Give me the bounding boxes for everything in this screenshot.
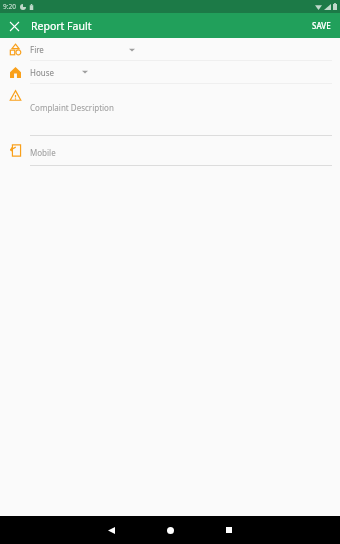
- staticText: Complaint Description: [30, 102, 114, 113]
- button[interactable]: Complaint: [0, 84, 340, 135]
- button[interactable]: Back: [100, 519, 122, 541]
- button[interactable]: Category: [0, 39, 340, 60]
- button[interactable]: Location: [0, 61, 340, 83]
- button[interactable]: SAVE: [303, 14, 340, 37]
- staticText: SAVE: [312, 20, 331, 31]
- button[interactable]: Home: [159, 519, 181, 541]
- button[interactable]: Recent apps: [218, 519, 240, 541]
- button[interactable]: Close: [4, 16, 24, 36]
- staticText: House: [30, 67, 55, 78]
- staticText: 9:20: [3, 2, 16, 11]
- staticText: Fire: [30, 44, 44, 55]
- button[interactable]: Mobile: [0, 136, 340, 165]
- staticText: Report Fault: [31, 19, 92, 33]
- staticText: Mobile: [30, 147, 56, 158]
